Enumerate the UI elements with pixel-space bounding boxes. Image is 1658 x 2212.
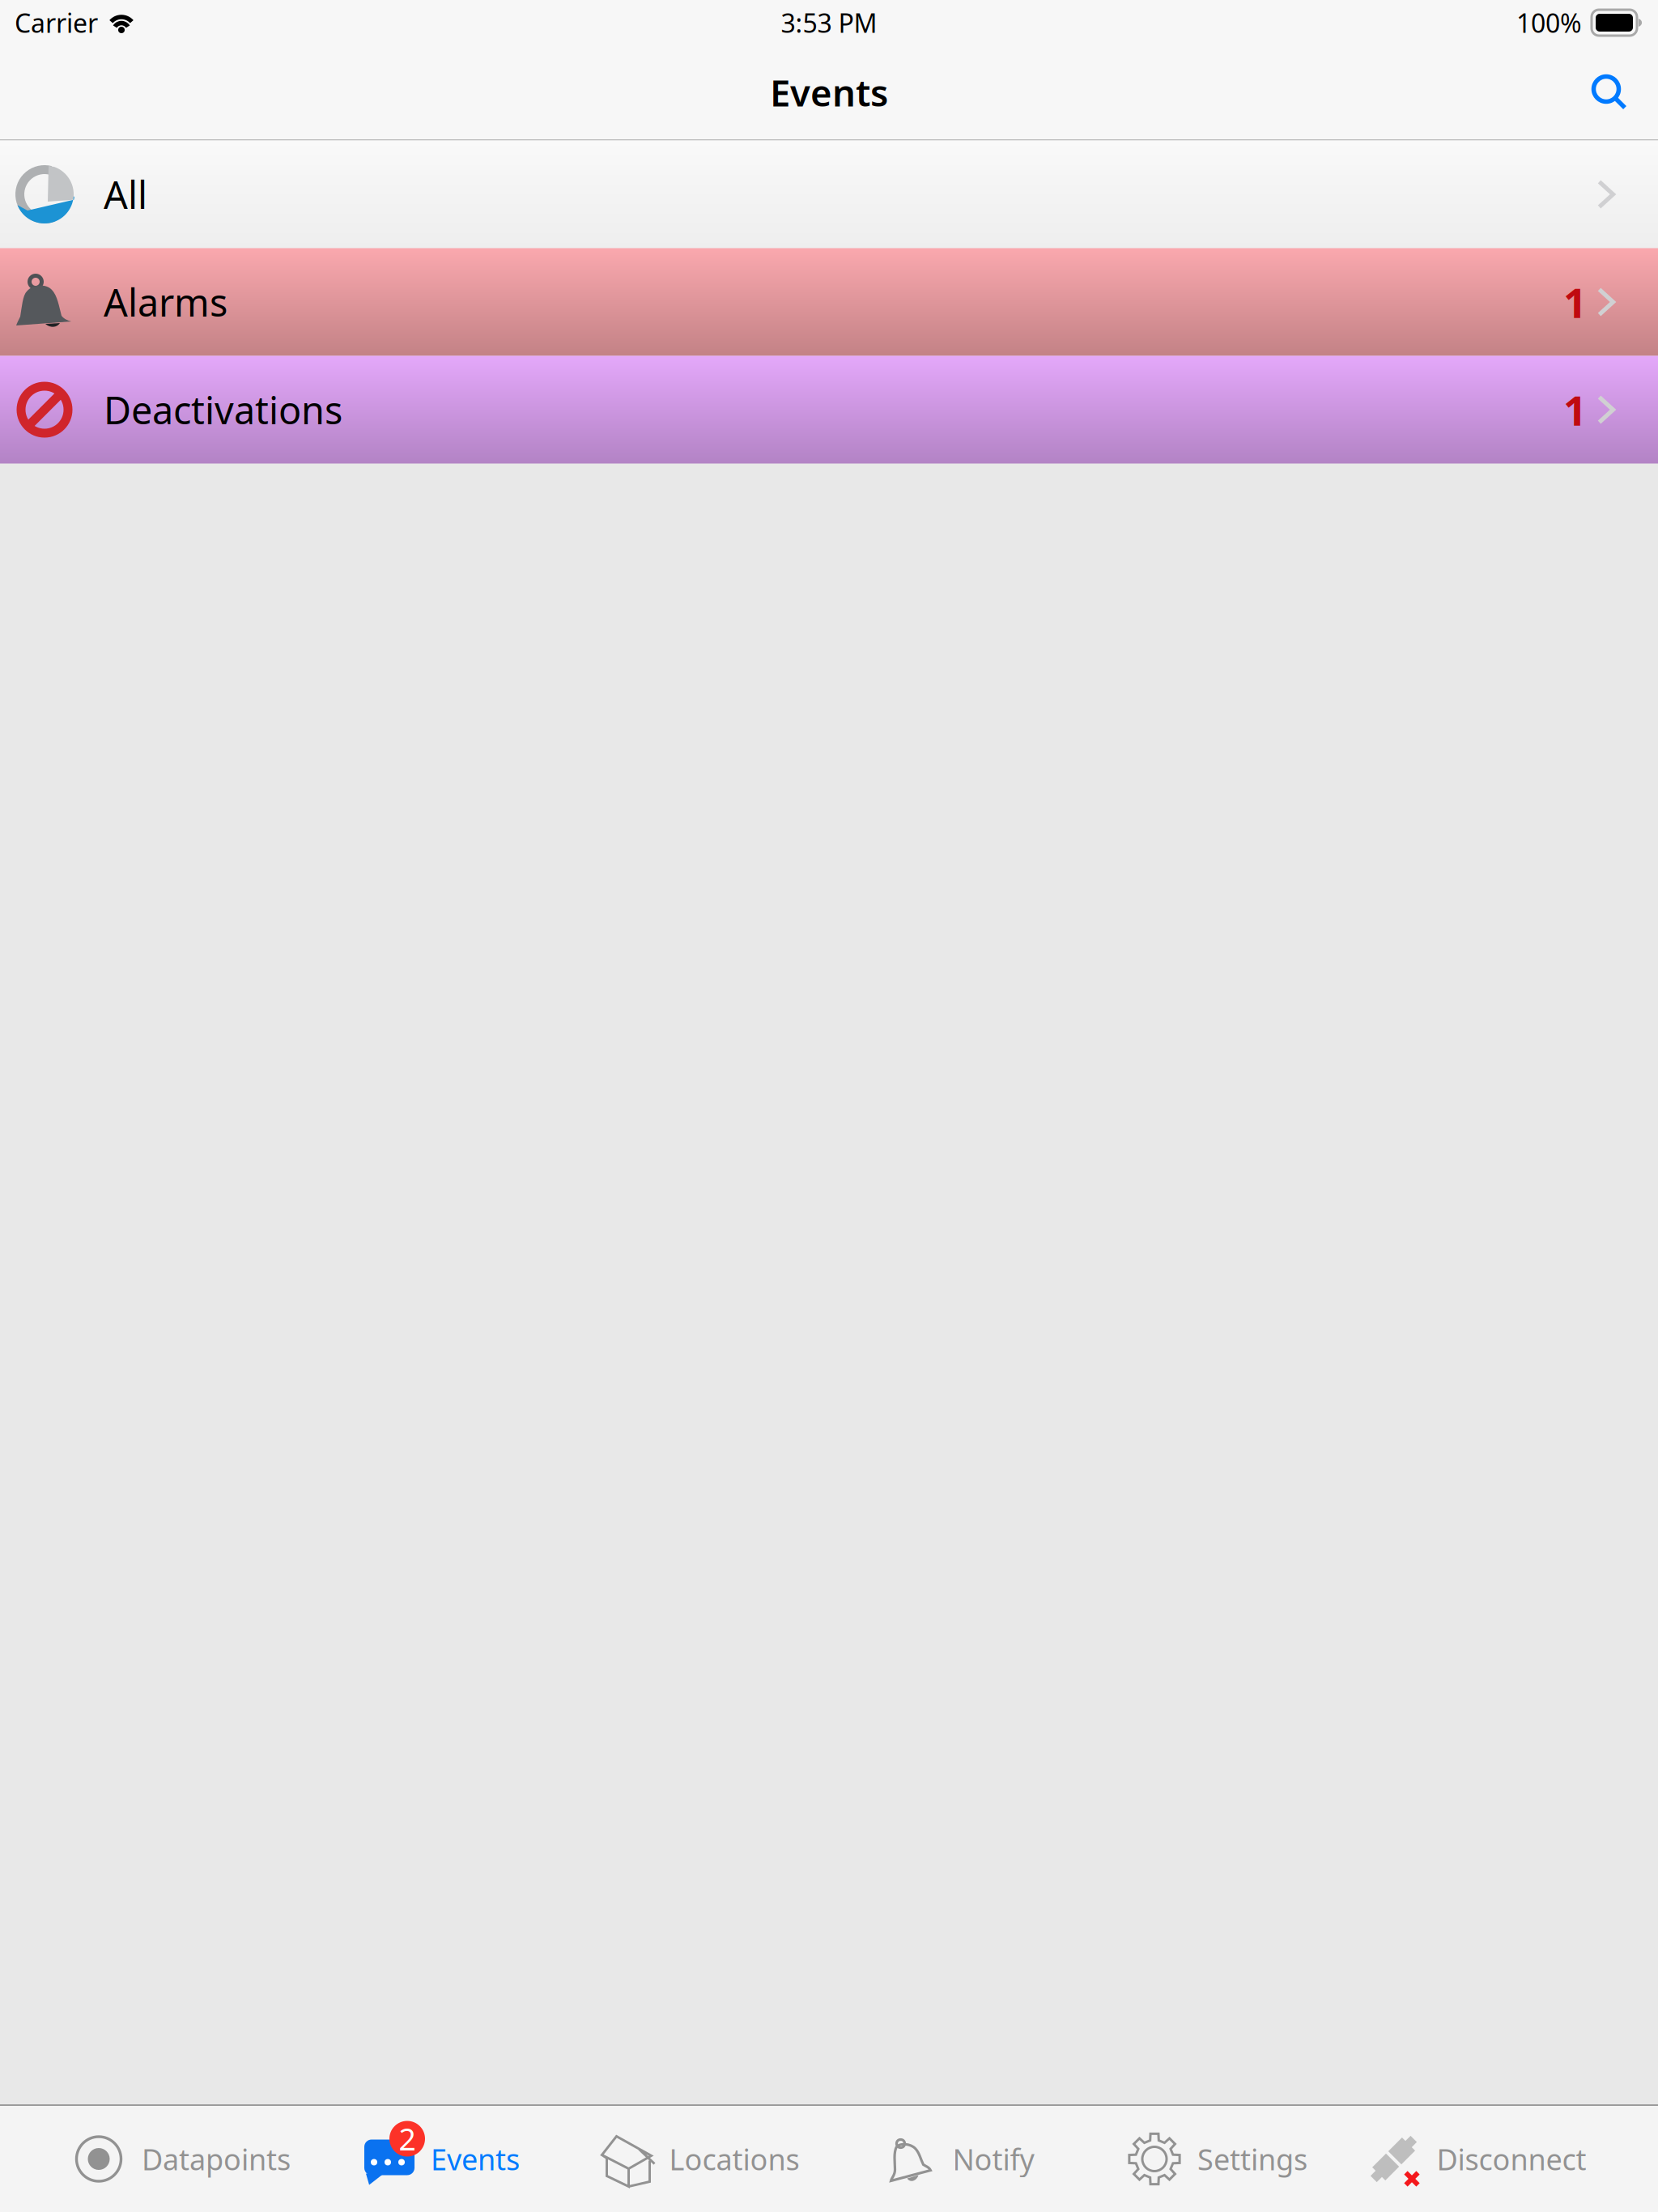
button[interactable]: Datapoints [52,2106,311,2212]
staticText: Events [770,68,888,117]
staticText: All [104,169,147,219]
staticText: 1 [1563,382,1587,437]
button[interactable]: Disconnect [1347,2106,1606,2212]
staticText: Settings [1197,2140,1307,2178]
staticText: Disconnect [1437,2140,1586,2178]
staticText: Deactivations [104,385,342,435]
button[interactable]: All [0,140,1658,248]
button[interactable]: 2 [311,2106,570,2212]
staticText: Locations [669,2140,799,2178]
staticText: Notify [952,2140,1034,2178]
staticText: 100% [1516,6,1582,40]
staticText: Datapoints [142,2140,291,2178]
staticText: Events [431,2140,520,2178]
button[interactable]: Deactivations [0,356,1658,464]
staticText: 1 [1563,275,1587,329]
button[interactable]: Alarms [0,248,1658,356]
staticText: Alarms [104,277,227,327]
button[interactable]: Locations [570,2106,829,2212]
staticText: 3:53 PM [781,6,877,40]
button[interactable]: Settings [1088,2106,1347,2212]
staticText: 2 [399,2119,416,2159]
button[interactable]: Notify [829,2106,1088,2212]
button[interactable]: Search [1572,55,1647,130]
staticText: Carrier [15,6,98,40]
